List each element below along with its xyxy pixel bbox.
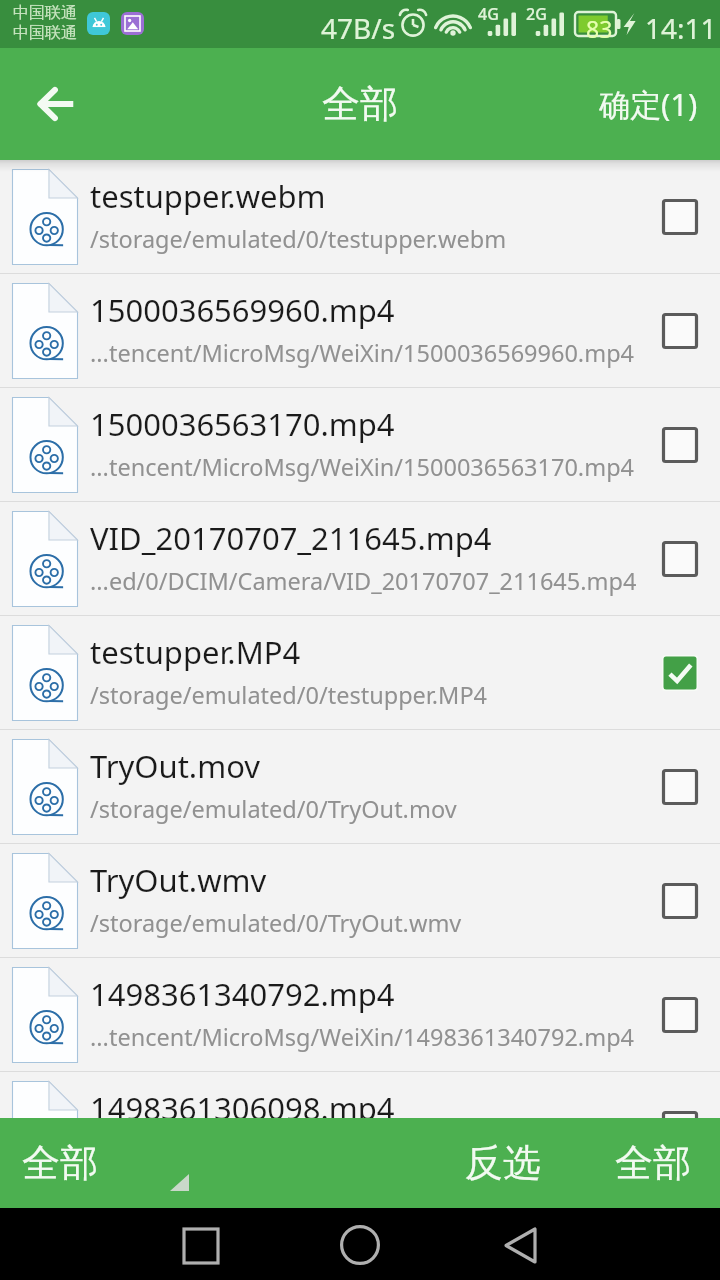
button[interactable]: 全部 [599,1118,707,1208]
staticText: VID_20170707_211645.mp4 [90,517,492,559]
staticText: 1498361306098.mp4 [90,1087,395,1129]
staticText: TryOut.mov [90,745,261,787]
staticText: 全部 [322,80,398,128]
button[interactable]: Select file [640,844,720,957]
staticText: 中国联通 [13,3,77,23]
button[interactable]: 1498361306098.mp4 [0,1072,720,1185]
button[interactable]: Select file [640,1072,720,1185]
button[interactable]: Select file [640,160,720,273]
button[interactable]: 1500036563170.mp4 [0,388,720,501]
button[interactable]: 全部 [0,1118,203,1208]
button[interactable]: Select file [640,274,720,387]
button[interactable]: VID_20170707_211645.mp4 [0,502,720,615]
button[interactable]: TryOut.wmv [0,844,720,957]
button[interactable]: Back [20,68,92,140]
staticText: 47B/s [321,9,396,47]
staticText: 4G [478,3,499,25]
staticText: 全部 [22,1139,98,1187]
staticText: ...ed/0/DCIM/Camera/VID_20170707_211645.… [90,565,636,597]
staticText: 1500036569960.mp4 [90,289,395,331]
button[interactable]: TryOut.mov [0,730,720,843]
staticText: 2G [526,3,547,25]
staticText: ...tencent/MicroMsg/WeiXin/1498361306098… [90,1135,635,1167]
staticText: 反选 [465,1139,541,1187]
button[interactable]: Select file [640,388,720,501]
staticText: /storage/emulated/0/testupper.MP4 [90,679,488,711]
staticText: testupper.MP4 [90,631,301,673]
button[interactable]: Back [483,1208,557,1280]
button[interactable]: Select file [640,730,720,843]
staticText: /storage/emulated/0/TryOut.wmv [90,907,462,939]
staticText: /storage/emulated/0/TryOut.mov [90,793,457,825]
button[interactable]: Select file [640,616,720,729]
staticText: ...tencent/MicroMsg/WeiXin/1498361340792… [90,1021,635,1053]
staticText: /storage/emulated/0/testupper.webm [90,223,507,255]
staticText: testupper.webm [90,175,326,217]
button[interactable]: Select file [640,502,720,615]
button[interactable]: testupper.MP4 [0,616,720,729]
staticText: TryOut.wmv [90,859,267,901]
staticText: ...tencent/MicroMsg/WeiXin/1500036569960… [90,337,635,369]
staticText: 中国联通 [13,23,77,43]
staticText: ...tencent/MicroMsg/WeiXin/1500036563170… [90,451,635,483]
button[interactable]: 反选 [449,1118,557,1208]
button[interactable]: 1498361340792.mp4 [0,958,720,1071]
staticText: 确定(1) [599,83,698,125]
button[interactable]: 确定(1) [583,48,720,160]
staticText: 83 [586,13,613,44]
staticText: 1498361340792.mp4 [90,973,395,1015]
staticText: 14:11 [645,9,717,47]
button[interactable]: testupper.webm [0,160,720,273]
button[interactable]: 1500036569960.mp4 [0,274,720,387]
button[interactable]: Home [323,1208,397,1280]
staticText: 1500036563170.mp4 [90,403,395,445]
button[interactable]: Select file [640,958,720,1071]
button[interactable]: Recents [164,1208,238,1280]
staticText: 全部 [615,1139,691,1187]
